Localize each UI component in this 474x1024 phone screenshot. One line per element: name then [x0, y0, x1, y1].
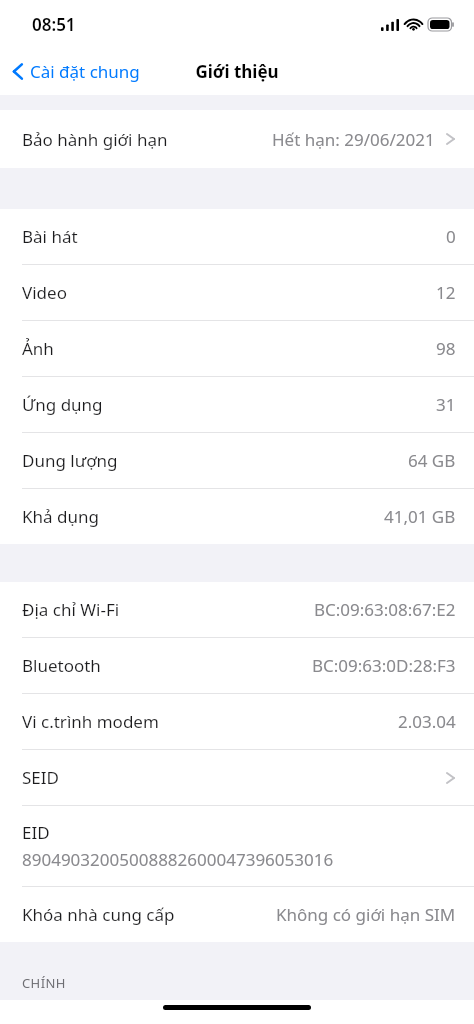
button[interactable]: EID: [0, 806, 474, 886]
staticText: Địa chỉ Wi-Fi: [22, 598, 120, 621]
staticText: Cài đặt chung: [30, 60, 140, 83]
button[interactable]: Bảo hành giới hạn: [0, 110, 474, 168]
staticText: SEID: [22, 766, 59, 789]
button[interactable]: SEID: [0, 750, 474, 805]
staticText: 41,01 GB: [384, 505, 456, 528]
staticText: Không có giới hạn SIM: [276, 903, 456, 926]
staticText: 64 GB: [408, 449, 456, 472]
staticText: Ứng dụng: [22, 393, 103, 416]
staticText: Vi c.trình modem: [22, 710, 159, 733]
button[interactable]: Ảnh: [0, 321, 474, 376]
staticText: Ảnh: [22, 337, 54, 360]
button[interactable]: Khả dụng: [0, 489, 474, 544]
button[interactable]: Địa chỉ Wi-Fi: [0, 582, 474, 637]
button[interactable]: Ứng dụng: [0, 377, 474, 432]
staticText: Khóa nhà cung cấp: [22, 903, 175, 926]
button[interactable]: Bài hát: [0, 209, 474, 264]
staticText: 08:51: [32, 13, 76, 36]
staticText: Bluetooth: [22, 654, 101, 677]
staticText: Bảo hành giới hạn: [22, 128, 168, 151]
button[interactable]: Cài đặt chung: [0, 54, 150, 89]
staticText: Bài hát: [22, 225, 78, 248]
staticText: 0: [446, 225, 456, 248]
staticText: 12: [436, 281, 456, 304]
staticText: BC:09:63:08:67:E2: [314, 598, 456, 621]
button[interactable]: Dung lượng: [0, 433, 474, 488]
staticText: 2.03.04: [398, 710, 456, 733]
staticText: Khả dụng: [22, 505, 99, 528]
staticText: 89049032005008882600047396053016: [22, 848, 334, 871]
staticText: Video: [22, 281, 67, 304]
staticText: Giới thiệu: [195, 60, 279, 83]
staticText: BC:09:63:0D:28:F3: [312, 654, 456, 677]
staticText: Dung lượng: [22, 449, 118, 472]
button[interactable]: Khóa nhà cung cấp: [0, 887, 474, 942]
button[interactable]: Bluetooth: [0, 638, 474, 693]
staticText: CHÍNH: [22, 974, 66, 992]
staticText: 98: [436, 337, 456, 360]
button[interactable]: Vi c.trình modem: [0, 694, 474, 749]
staticText: Hết hạn: 29/06/2021: [272, 128, 435, 151]
staticText: 31: [436, 393, 456, 416]
button[interactable]: Video: [0, 265, 474, 320]
staticText: EID: [22, 821, 50, 844]
